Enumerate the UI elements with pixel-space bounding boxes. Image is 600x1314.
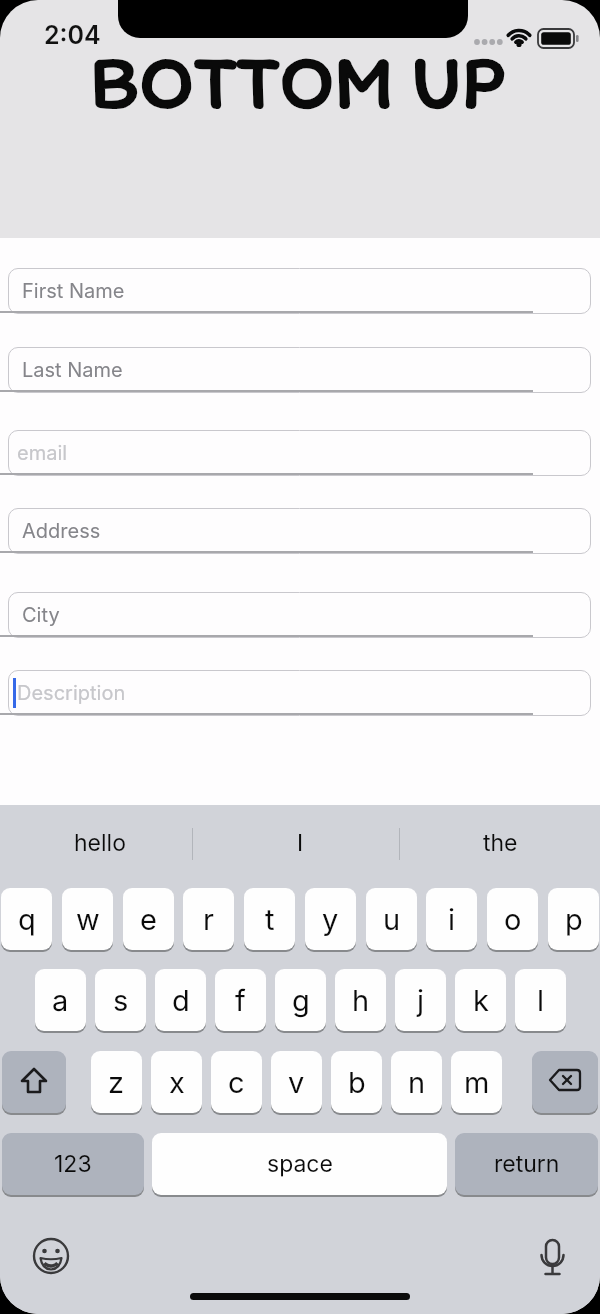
button[interactable]: b xyxy=(331,1051,382,1115)
button[interactable]: f xyxy=(215,969,266,1033)
staticText: d xyxy=(172,983,190,1018)
button[interactable]: 123 xyxy=(2,1133,144,1197)
staticText: 2:04 xyxy=(44,20,101,50)
staticText: o xyxy=(504,902,522,937)
staticText: 123 xyxy=(54,1150,92,1178)
button[interactable]: y xyxy=(305,888,356,952)
button[interactable]: I xyxy=(200,810,400,876)
button[interactable]: i xyxy=(426,888,477,952)
staticText: r xyxy=(203,902,214,937)
button[interactable]: r xyxy=(183,888,234,952)
staticText: z xyxy=(108,1065,125,1100)
button[interactable]: l xyxy=(515,969,566,1033)
button[interactable]: m xyxy=(451,1051,502,1115)
staticText: BOTTOM UP xyxy=(90,36,505,127)
staticText: j xyxy=(417,983,425,1018)
staticText: Last Name xyxy=(22,358,123,382)
button[interactable]: a xyxy=(35,969,86,1033)
staticText: y xyxy=(322,902,339,937)
button[interactable]: q xyxy=(1,888,52,952)
staticText: m xyxy=(464,1065,490,1100)
staticText: p xyxy=(565,902,583,937)
button[interactable]: s xyxy=(95,969,146,1033)
button[interactable]: the xyxy=(400,810,600,876)
staticText: v xyxy=(288,1065,305,1100)
button[interactable]: email xyxy=(8,430,591,476)
staticText: b xyxy=(348,1065,366,1100)
button[interactable]: Address xyxy=(8,508,591,554)
staticText: h xyxy=(352,983,370,1018)
staticText: the xyxy=(483,829,518,857)
button[interactable]: c xyxy=(211,1051,262,1115)
staticText: g xyxy=(292,983,310,1018)
button[interactable]: hello xyxy=(0,810,200,876)
staticText: space xyxy=(267,1150,333,1178)
staticText: hello xyxy=(74,829,126,857)
staticText: s xyxy=(113,983,129,1018)
button[interactable]: h xyxy=(335,969,386,1033)
staticText: e xyxy=(140,902,157,937)
staticText: a xyxy=(52,983,69,1018)
button[interactable]: w xyxy=(62,888,113,952)
staticText: First Name xyxy=(22,279,125,303)
staticText: u xyxy=(383,902,401,937)
button[interactable]: u xyxy=(366,888,417,952)
button[interactable]: e xyxy=(123,888,174,952)
button[interactable]: return xyxy=(455,1133,598,1197)
staticText: q xyxy=(18,902,36,937)
button[interactable] xyxy=(532,1051,598,1115)
staticText: w xyxy=(76,902,100,937)
button[interactable]: City xyxy=(8,592,591,638)
button[interactable]: k xyxy=(455,969,506,1033)
button[interactable]: o xyxy=(487,888,538,952)
button[interactable]: d xyxy=(155,969,206,1033)
button[interactable]: v xyxy=(271,1051,322,1115)
staticText: c xyxy=(228,1065,245,1100)
button[interactable] xyxy=(2,1051,66,1115)
button[interactable]: t xyxy=(244,888,295,952)
button[interactable]: Last Name xyxy=(8,347,591,393)
staticText: f xyxy=(235,983,246,1018)
button[interactable]: g xyxy=(275,969,326,1033)
button[interactable]: Description xyxy=(8,670,591,716)
button[interactable]: x xyxy=(151,1051,202,1115)
staticText: BOTTOM UP xyxy=(90,36,505,127)
button[interactable]: z xyxy=(91,1051,142,1115)
button[interactable]: First Name xyxy=(8,268,591,314)
staticText: k xyxy=(473,983,489,1018)
staticText: l xyxy=(537,983,545,1018)
staticText: Description xyxy=(17,681,126,705)
staticText: t xyxy=(265,902,275,937)
button[interactable]: n xyxy=(391,1051,442,1115)
staticText: email xyxy=(17,441,68,465)
staticText: I xyxy=(297,829,304,857)
staticText: City xyxy=(22,603,60,627)
staticText: return xyxy=(494,1150,560,1178)
button[interactable]: j xyxy=(395,969,446,1033)
staticText: i xyxy=(448,902,456,937)
staticText: n xyxy=(408,1065,426,1100)
button[interactable]: space xyxy=(152,1133,447,1197)
staticText: Address xyxy=(22,519,101,543)
button[interactable]: p xyxy=(548,888,599,952)
staticText: x xyxy=(169,1065,185,1100)
